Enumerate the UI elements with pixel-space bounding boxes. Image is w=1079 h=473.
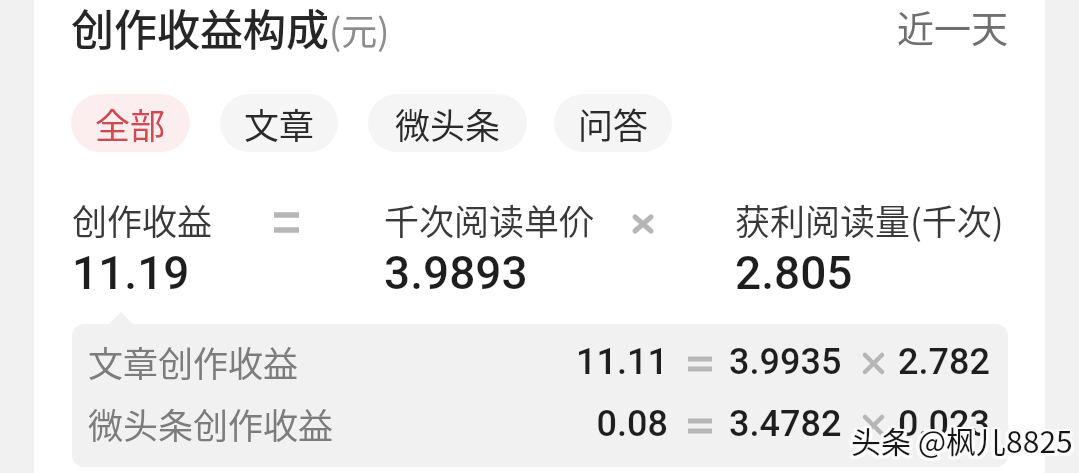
button[interactable]: 微头条 xyxy=(368,94,527,152)
staticText: 头条 @枫儿8825 xyxy=(854,420,1076,463)
staticText: 0.023 xyxy=(898,403,990,445)
staticText: 头条 @枫儿8825 xyxy=(849,416,1071,459)
staticText: 头条 @枫儿8825 xyxy=(853,416,1075,459)
button[interactable]: 文章 xyxy=(220,94,338,152)
staticText: 千次阅读单价 xyxy=(384,194,595,245)
staticText: 近一天 xyxy=(897,0,1008,54)
staticText: 头条 @枫儿8825 xyxy=(851,418,1073,461)
button[interactable]: 微头条创作收益 xyxy=(72,398,1008,456)
staticText: 头条 @枫儿8825 xyxy=(850,416,1072,459)
staticText: 头条 @枫儿8825 xyxy=(848,420,1070,463)
other: times xyxy=(633,215,653,233)
staticText: 头条 @枫儿8825 xyxy=(849,421,1071,464)
button[interactable]: 问答 xyxy=(554,94,672,152)
other: equals xyxy=(274,215,299,230)
staticText: 文章创作收益 xyxy=(88,336,299,387)
staticText: 获利阅读量(千次) xyxy=(735,194,1004,245)
staticText: 创作收益 xyxy=(72,194,213,245)
staticText: 头条 @枫儿8825 xyxy=(854,418,1076,461)
staticText: 3.4782 xyxy=(729,403,842,445)
staticText: 11.19 xyxy=(72,246,190,300)
button[interactable]: 文章创作收益 xyxy=(72,336,1008,394)
staticText: 全部 xyxy=(95,98,166,149)
staticText: (元) xyxy=(329,3,390,55)
button[interactable]: 近一天 xyxy=(877,0,1028,64)
staticText: 头条 @枫儿8825 xyxy=(852,416,1074,459)
staticText: 文章 xyxy=(244,98,315,149)
staticText: 11.11 xyxy=(524,341,668,383)
staticText: 2.782 xyxy=(898,341,990,383)
button[interactable]: 全部 xyxy=(71,94,190,152)
staticText: 微头条 xyxy=(395,98,501,149)
staticText: 0.08 xyxy=(524,403,668,445)
staticText: 问答 xyxy=(578,98,649,149)
staticText: 头条 @枫儿8825 xyxy=(851,421,1073,464)
staticText: 头条 @枫儿8825 xyxy=(848,418,1070,461)
staticText: 3.9893 xyxy=(384,246,528,300)
staticText: 创作收益构成 xyxy=(71,0,329,58)
staticText: 3.9935 xyxy=(729,341,842,383)
staticText: 微头条创作收益 xyxy=(88,398,334,449)
staticText: 头条 @枫儿8825 xyxy=(848,417,1070,460)
staticText: 2.805 xyxy=(735,246,853,300)
staticText: 头条 @枫儿8825 xyxy=(853,421,1075,464)
